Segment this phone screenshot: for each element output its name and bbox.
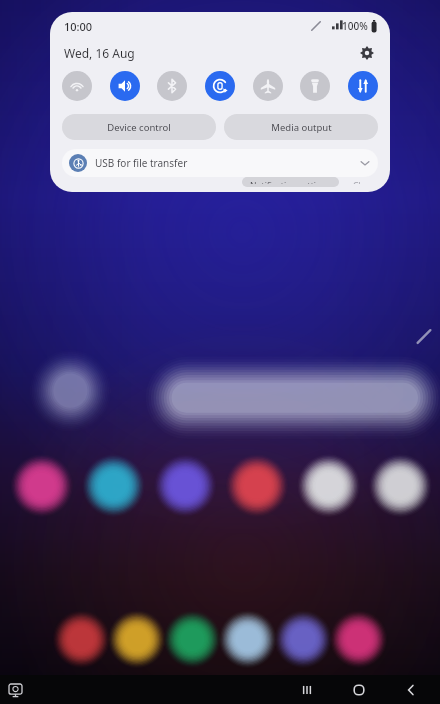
- button[interactable]: Wi-Fi: [62, 71, 92, 101]
- button[interactable]: Auto rotate: [205, 71, 235, 101]
- button[interactable]: Device control: [62, 114, 216, 140]
- button[interactable]: Settings: [354, 40, 380, 66]
- button[interactable]: Flashlight: [300, 71, 330, 101]
- staticText: USB for file transfer: [95, 156, 188, 170]
- button[interactable]: Recents: [294, 677, 320, 703]
- button[interactable]: Media output: [224, 114, 378, 140]
- button[interactable]: USB for file transfer: [62, 149, 378, 177]
- button[interactable]: Back: [398, 677, 424, 703]
- staticText: Media output: [271, 121, 332, 134]
- staticText: Device control: [107, 121, 171, 134]
- button[interactable]: Airplane mode: [253, 71, 283, 101]
- button[interactable]: Screenshot: [4, 679, 26, 701]
- staticText: 100%: [342, 19, 368, 33]
- staticText: Clear: [353, 180, 374, 184]
- button[interactable]: Bluetooth: [157, 71, 187, 101]
- button[interactable]: Mobile data: [348, 71, 378, 101]
- staticText: Wed, 16 Aug: [64, 45, 135, 61]
- staticText: Notification settings: [250, 180, 331, 184]
- button[interactable]: Sound: [110, 71, 140, 101]
- button[interactable]: Notification settings: [242, 177, 339, 187]
- button[interactable]: Home: [346, 677, 372, 703]
- staticText: 10:00: [64, 19, 93, 34]
- button[interactable]: Clear: [347, 177, 380, 187]
